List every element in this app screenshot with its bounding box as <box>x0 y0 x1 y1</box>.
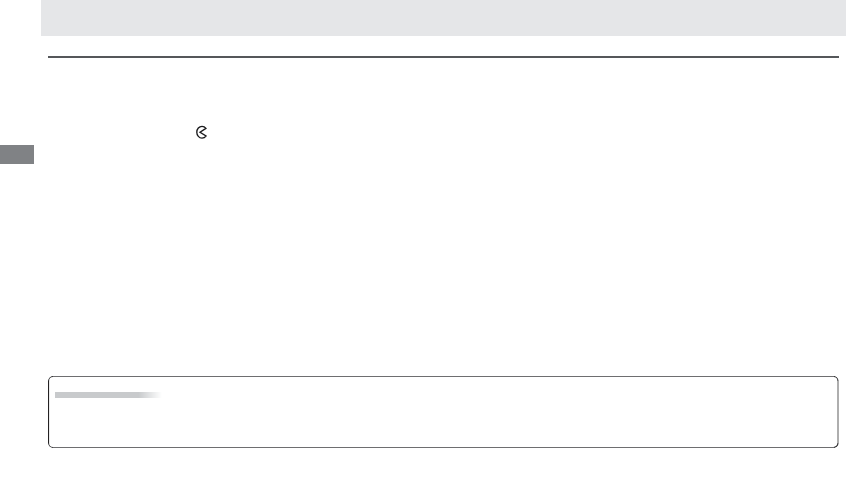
button[interactable]: Card <box>48 376 839 448</box>
button[interactable]: Logo <box>195 125 208 139</box>
